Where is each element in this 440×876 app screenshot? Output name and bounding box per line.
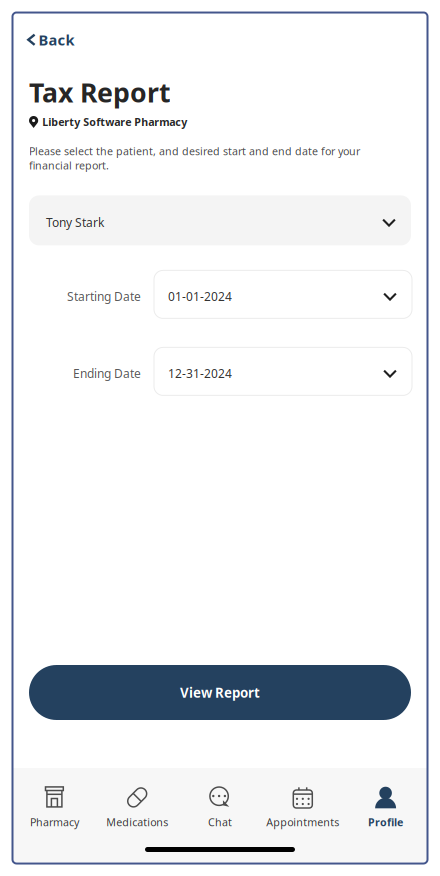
staticText: 01-01-2024	[168, 288, 232, 304]
staticText: Please select the patient, and desired s…	[29, 144, 360, 172]
button[interactable]: Tony Stark	[29, 195, 411, 245]
staticText: Tax Report	[29, 74, 171, 110]
button[interactable]: Pharmacy	[13, 773, 96, 832]
staticText: Chat	[208, 815, 232, 829]
staticText: Starting Date	[67, 288, 141, 304]
staticText: Ending Date	[73, 365, 141, 381]
staticText: Profile	[368, 815, 403, 829]
button[interactable]: Appointments	[261, 773, 344, 832]
button[interactable]: Medications	[96, 773, 179, 832]
staticText: Liberty Software Pharmacy	[42, 115, 187, 129]
staticText: Appointments	[266, 815, 339, 829]
staticText: View Report	[180, 684, 260, 701]
staticText: Pharmacy	[30, 815, 79, 829]
staticText: 12-31-2024	[168, 365, 232, 381]
staticText: Medications	[106, 815, 168, 829]
button[interactable]: Back	[27, 26, 74, 53]
staticText: Tony Stark	[46, 214, 104, 230]
button[interactable]: 01-01-2024	[154, 270, 412, 318]
button[interactable]: View Report	[29, 665, 411, 720]
button[interactable]: 12-31-2024	[154, 347, 412, 395]
staticText: Back	[38, 30, 74, 49]
button[interactable]: Profile	[344, 773, 427, 832]
button[interactable]: Chat	[179, 773, 261, 832]
